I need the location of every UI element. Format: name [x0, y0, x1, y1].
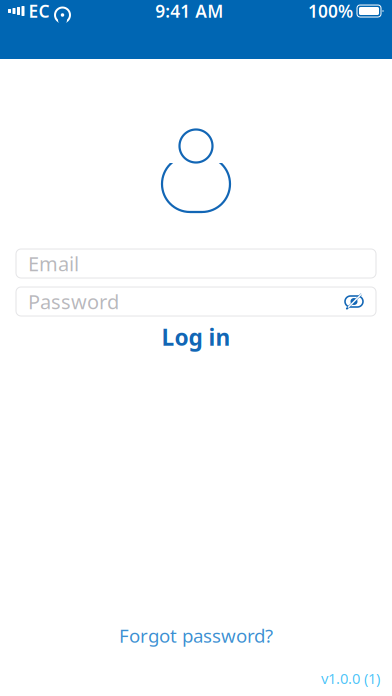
staticText: 9:41 AM: [155, 0, 223, 22]
staticText: 100%: [308, 0, 353, 22]
button[interactable]: Log in: [16, 316, 376, 358]
button[interactable]: Email: [16, 249, 376, 278]
staticText: Email: [28, 250, 79, 277]
staticText: EC: [28, 0, 49, 22]
staticText: v1.0.0 (1): [321, 668, 380, 688]
staticText: Forgot password?: [119, 623, 273, 648]
button[interactable]: Forgot password?: [119, 620, 273, 650]
staticText: Password: [28, 288, 119, 315]
staticText: Log in: [161, 322, 230, 352]
button[interactable]: Password: [16, 287, 376, 316]
